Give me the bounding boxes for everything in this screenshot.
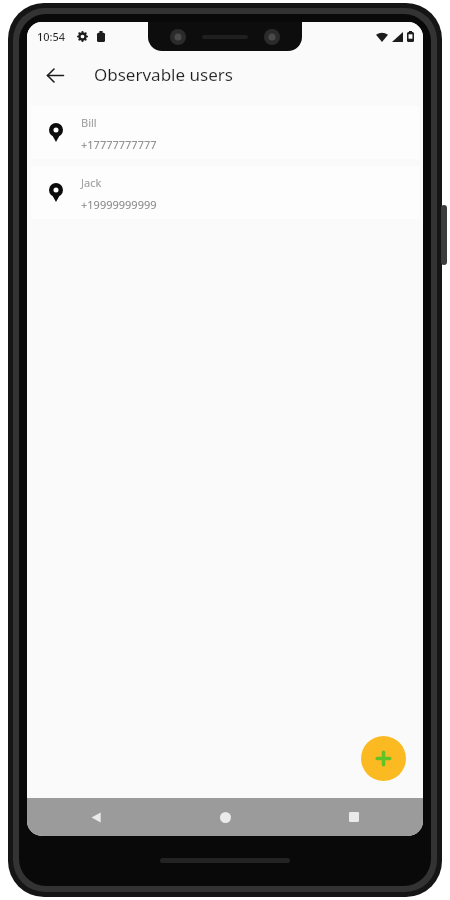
staticText: Jack bbox=[81, 175, 102, 190]
button[interactable]: Jack bbox=[31, 166, 419, 219]
button[interactable]: Back bbox=[36, 56, 74, 94]
staticText: +19999999999 bbox=[81, 197, 157, 212]
staticText: Bill bbox=[81, 115, 97, 130]
button[interactable]: Add user bbox=[361, 736, 406, 781]
staticText: Observable users bbox=[94, 63, 233, 86]
button[interactable]: Back bbox=[79, 800, 113, 834]
button[interactable]: Bill bbox=[31, 106, 419, 159]
button[interactable]: Recents bbox=[337, 800, 371, 834]
staticText: +17777777777 bbox=[81, 137, 157, 152]
button[interactable]: Home bbox=[208, 800, 242, 834]
staticText: 10:54 bbox=[37, 29, 66, 44]
